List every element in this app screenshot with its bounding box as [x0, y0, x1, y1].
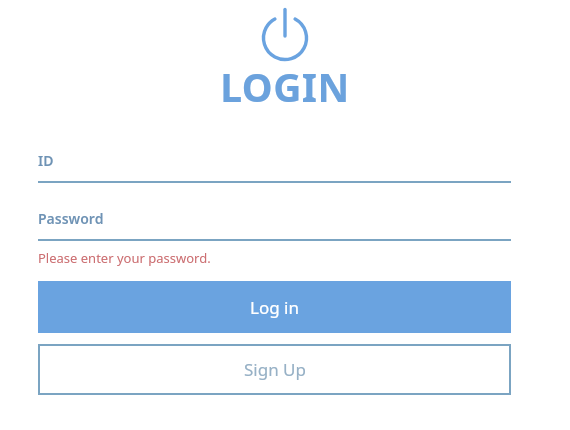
staticText: Log in	[250, 296, 299, 319]
staticText: ID	[38, 151, 54, 170]
staticText: Sign Up	[244, 358, 306, 381]
staticText: Please enter your password.	[38, 249, 211, 267]
staticText: Password	[38, 209, 104, 228]
staticText: LOGIN	[220, 60, 350, 113]
other: Power	[258, 10, 312, 60]
button[interactable]: Log in	[38, 281, 511, 333]
button[interactable]: ID	[38, 151, 511, 183]
button[interactable]: Sign Up	[38, 344, 511, 395]
button[interactable]: Password	[38, 209, 511, 241]
